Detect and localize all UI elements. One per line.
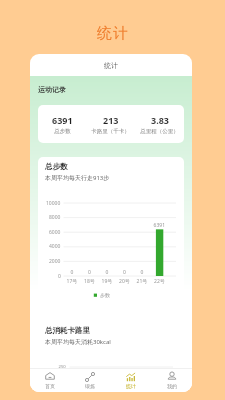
other: Workout (85, 372, 95, 380)
staticText: 总步数 (45, 162, 68, 171)
other: Profile (167, 372, 177, 380)
other: Statistics (126, 372, 136, 380)
staticText: 213 (103, 114, 119, 126)
other: Home (45, 372, 55, 380)
button[interactable]: Home (30, 368, 70, 392)
staticText: 我的 (167, 383, 177, 389)
staticText: 统计 (126, 383, 136, 389)
staticText: 总里程（公里） (140, 128, 179, 135)
staticText: 统计 (104, 61, 118, 70)
button[interactable]: Workout (70, 368, 110, 392)
staticText: 锻炼 (85, 383, 95, 389)
staticText: 6391 (52, 114, 73, 126)
staticText: 首页 (45, 383, 55, 389)
staticText: 总步数 (54, 128, 71, 135)
staticText: 运动记录 (38, 85, 66, 94)
button[interactable]: Statistics (110, 368, 151, 392)
staticText: 本周平均每天消耗30kcal (45, 338, 111, 346)
staticText: 卡路里（千卡） (91, 128, 130, 135)
button[interactable]: Profile (151, 368, 192, 392)
staticText: 3.83 (151, 114, 169, 126)
staticText: 总消耗卡路里 (45, 326, 90, 335)
staticText: 统计 (96, 24, 129, 43)
staticText: 本周平均每天行走913步 (45, 174, 110, 182)
